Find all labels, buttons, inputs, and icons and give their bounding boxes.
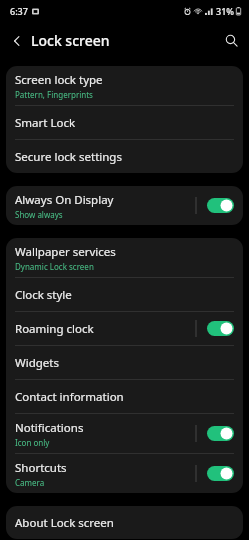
button[interactable]: Back bbox=[7, 31, 27, 51]
button[interactable]: Toggle Notifications bbox=[204, 423, 237, 444]
staticText: Always On Display bbox=[15, 192, 114, 208]
staticText: Widgets bbox=[15, 355, 59, 371]
staticText: Roaming clock bbox=[15, 321, 94, 337]
button[interactable]: Search bbox=[221, 30, 242, 51]
button[interactable]: Toggle Roaming clock bbox=[204, 318, 237, 339]
button[interactable]: Notifications bbox=[6, 414, 243, 453]
staticText: Clock style bbox=[15, 287, 72, 303]
staticText: Contact information bbox=[15, 389, 124, 405]
staticText: Show always bbox=[15, 209, 63, 220]
staticText: Screen lock type bbox=[15, 72, 103, 88]
staticText: Pattern, Fingerprints bbox=[15, 89, 93, 100]
staticText: 31% bbox=[216, 5, 234, 17]
button[interactable]: Roaming clock bbox=[6, 312, 243, 345]
staticText: 6:37 bbox=[10, 5, 28, 17]
button[interactable]: Smart Lock bbox=[6, 106, 243, 139]
button[interactable]: Shortcuts bbox=[6, 454, 243, 493]
staticText: Camera bbox=[15, 477, 45, 488]
staticText: Smart Lock bbox=[15, 115, 76, 131]
button[interactable]: Widgets bbox=[6, 346, 243, 379]
staticText: About Lock screen bbox=[15, 515, 114, 531]
button[interactable]: Contact information bbox=[6, 380, 243, 413]
staticText: Secure lock settings bbox=[15, 149, 122, 165]
button[interactable]: Toggle Always On Display bbox=[204, 195, 237, 216]
button[interactable]: Always On Display bbox=[6, 186, 243, 225]
button[interactable]: Secure lock settings bbox=[6, 140, 243, 173]
staticText: Icon only bbox=[15, 437, 50, 448]
button[interactable]: Clock style bbox=[6, 278, 243, 311]
staticText: Lock screen bbox=[31, 31, 110, 50]
staticText: Dynamic Lock screen bbox=[15, 261, 94, 272]
staticText: Wallpaper services bbox=[15, 244, 116, 260]
button[interactable]: Toggle Shortcuts bbox=[204, 463, 237, 484]
staticText: Shortcuts bbox=[15, 460, 67, 476]
staticText: Notifications bbox=[15, 420, 84, 436]
button[interactable]: Screen lock type bbox=[6, 66, 243, 105]
button[interactable]: About Lock screen bbox=[6, 506, 243, 539]
button[interactable]: Wallpaper services bbox=[6, 238, 243, 277]
